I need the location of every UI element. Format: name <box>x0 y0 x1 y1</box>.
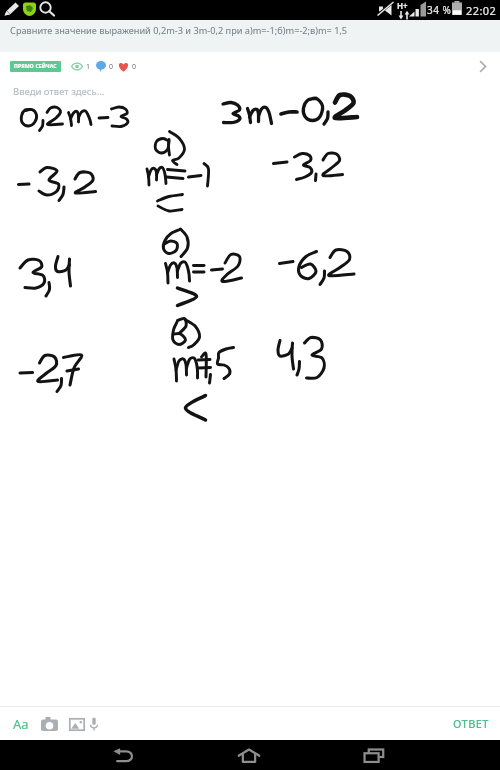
staticText: 22:02 <box>466 3 497 18</box>
staticText: Введи ответ здесь... <box>13 85 105 98</box>
staticText: 1 <box>86 62 91 72</box>
button[interactable]: Camera <box>35 710 63 738</box>
staticText: ОТВЕТ <box>453 716 489 731</box>
button[interactable]: Введи ответ здесь... <box>0 81 500 706</box>
button[interactable]: ПРЯМО СЕЙЧАС <box>0 52 500 81</box>
staticText: H+ <box>397 0 408 11</box>
button[interactable]: Back <box>101 740 145 770</box>
staticText: Сравните значение выражений 0,2m-3 и 3m-… <box>10 24 348 37</box>
button[interactable]: Home <box>227 740 271 770</box>
staticText: Aa <box>13 715 29 733</box>
staticText: 0 <box>132 62 137 72</box>
staticText: 0 <box>109 62 114 72</box>
staticText: ПРЯМО СЕЙЧАС <box>14 63 57 70</box>
button[interactable]: Recent apps <box>352 740 396 770</box>
staticText: 34 % <box>427 3 452 17</box>
button[interactable]: Gallery <box>63 710 91 738</box>
button[interactable]: ОТВЕТ <box>443 710 489 737</box>
button[interactable]: Aa <box>7 710 35 738</box>
button[interactable]: Voice input <box>80 710 108 738</box>
